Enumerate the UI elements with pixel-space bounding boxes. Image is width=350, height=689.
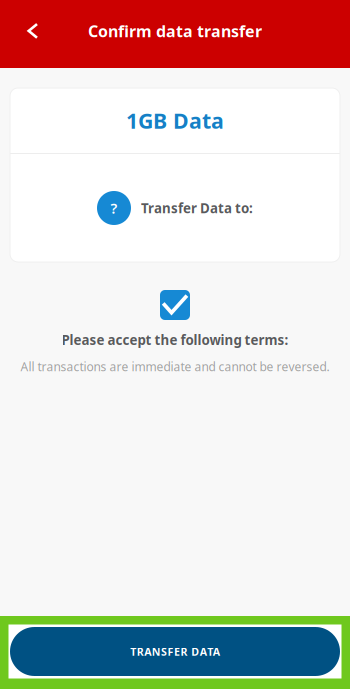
staticText: ? bbox=[110, 198, 117, 218]
button[interactable]: Help bbox=[97, 191, 131, 225]
staticText: Confirm data transfer bbox=[88, 20, 262, 42]
button[interactable]: TRANSFER DATA bbox=[10, 627, 340, 676]
button[interactable]: Back bbox=[11, 9, 55, 53]
staticText: 1GB Data bbox=[126, 106, 224, 135]
staticText: TRANSFER DATA bbox=[130, 644, 220, 659]
staticText: Please accept the following terms: bbox=[61, 331, 288, 349]
staticText: All transactions are immediate and canno… bbox=[20, 359, 329, 375]
staticText: Transfer Data to: bbox=[141, 199, 253, 217]
button[interactable]: Accept terms, checked bbox=[160, 290, 190, 320]
